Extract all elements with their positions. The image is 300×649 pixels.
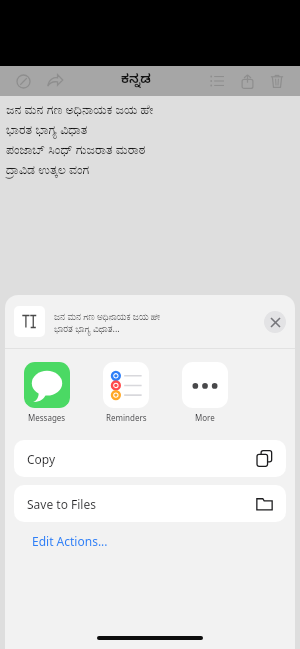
- button[interactable]: Share: [234, 68, 260, 94]
- button[interactable]: List: [204, 68, 230, 94]
- staticText: ದ್ರಾವಿಡ ಉತ್ಕಲ ವಂಗ: [6, 161, 90, 178]
- staticText: ಪಂಜಾಬ್ ಸಿಂಧ್ ಗುಜರಾತ ಮರಾಠ: [6, 141, 146, 158]
- staticText: Reminders: [106, 412, 147, 423]
- staticText: ಕನ್ನಡ: [121, 72, 151, 90]
- staticText: Edit Actions...: [32, 533, 108, 549]
- button[interactable]: Close: [264, 311, 286, 333]
- staticText: Copy: [27, 451, 56, 467]
- button[interactable]: Reminders: [98, 362, 154, 423]
- button[interactable]: Compass: [10, 68, 36, 94]
- button[interactable]: Delete: [264, 68, 290, 94]
- staticText: ಜನ ಮನ ಗಣ ಅಧಿನಾಯಕ ಜಯ ಹೇ: [6, 101, 154, 118]
- button[interactable]: Edit Actions...: [5, 522, 295, 560]
- button[interactable]: ಜನ ಮನ ಗಣ ಅಧಿನಾಯಕ ಜಯ ಹೇ: [5, 295, 295, 348]
- staticText: ಭಾರತ ಭಾಗ್ಯ ವಿಧಾತ...: [54, 322, 120, 334]
- button[interactable]: More: [177, 362, 233, 423]
- button[interactable]: Copy: [14, 440, 286, 477]
- staticText: More: [195, 412, 215, 423]
- button[interactable]: Forward: [42, 68, 68, 94]
- button[interactable]: Save to Files: [14, 485, 286, 522]
- staticText: Messages: [28, 412, 66, 423]
- staticText: Save to Files: [27, 496, 96, 512]
- button[interactable]: Messages: [19, 362, 75, 423]
- staticText: ಜನ ಮನ ಗಣ ಅಧಿನಾಯಕ ಜಯ ಹೇ: [54, 310, 161, 322]
- staticText: ಭಾರತ ಭಾಗ್ಯ ವಿಧಾತ: [6, 121, 88, 138]
